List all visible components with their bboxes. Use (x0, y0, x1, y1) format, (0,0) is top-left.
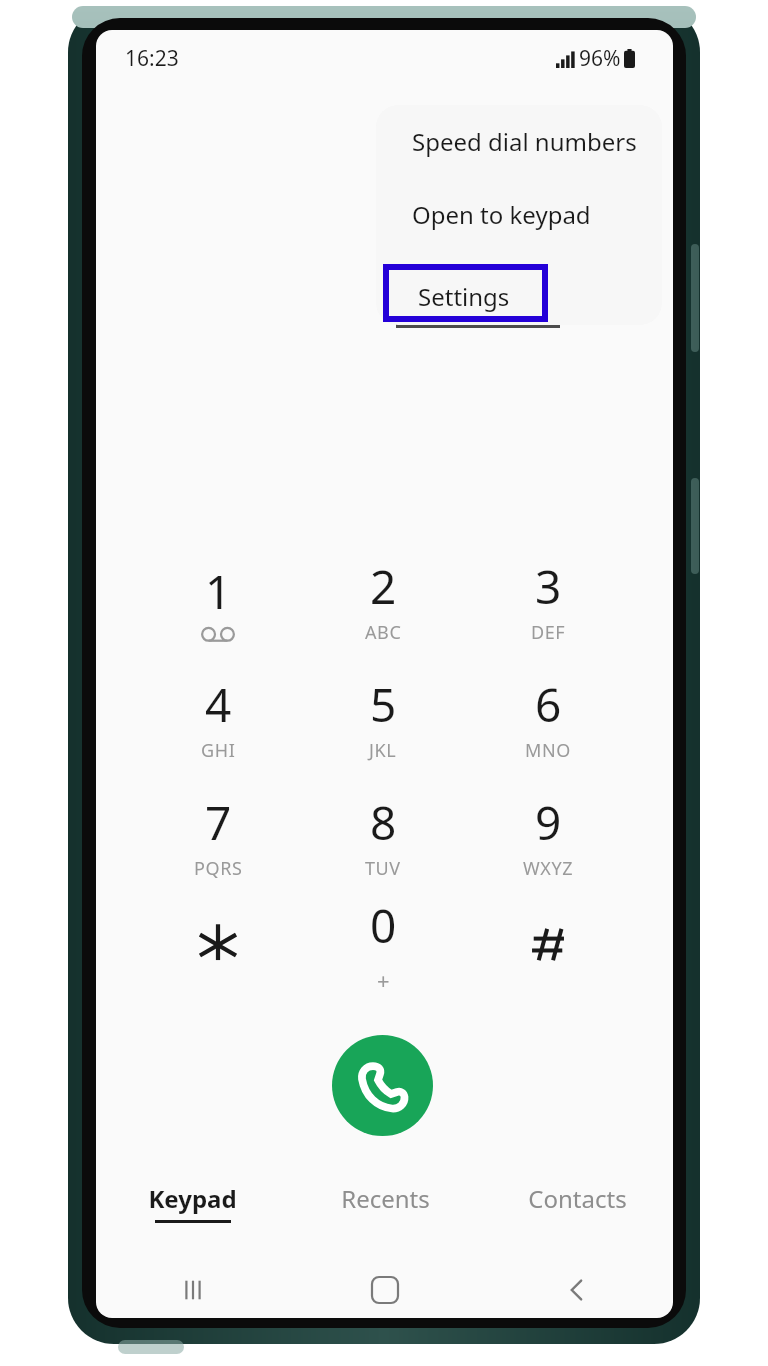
button[interactable]: Key 2 (313, 544, 453, 656)
staticText: 1 (205, 560, 232, 623)
staticText: Contacts (528, 1182, 627, 1215)
button[interactable]: Key 7 (148, 780, 288, 892)
button[interactable]: Settings (383, 264, 548, 322)
staticText: DEF (531, 620, 566, 645)
staticText: Settings (418, 280, 510, 313)
staticText: Recents (341, 1182, 430, 1215)
button[interactable]: Key 0 (313, 888, 453, 1000)
button[interactable]: Key 6 (478, 662, 618, 774)
staticText: Speed dial numbers (412, 125, 637, 158)
staticText: 96% (579, 44, 621, 73)
staticText: Open to keypad (412, 198, 591, 231)
button[interactable]: Key 3 (478, 544, 618, 656)
staticText: 6 (535, 673, 562, 736)
button[interactable]: Key * (148, 888, 288, 1000)
staticText: 0 (370, 894, 397, 957)
button[interactable]: Speed dial numbers (376, 105, 662, 178)
staticText: 3 (535, 555, 562, 618)
button[interactable]: Open to keypad (376, 178, 662, 251)
staticText: 2 (370, 555, 397, 618)
staticText: TUV (365, 856, 401, 881)
staticText: MNO (525, 738, 571, 763)
staticText: Keypad (148, 1182, 237, 1215)
staticText: WXYZ (523, 856, 574, 881)
staticText: 7 (205, 791, 232, 854)
button[interactable]: Key # (478, 888, 618, 1000)
button[interactable]: Key 1 (148, 544, 288, 656)
button[interactable]: Keypad (96, 1182, 289, 1240)
button[interactable]: Home (289, 1262, 481, 1318)
staticText: 4 (205, 673, 232, 736)
staticText: 5 (370, 673, 397, 736)
staticText: 16:23 (125, 44, 179, 73)
button[interactable]: Key 5 (313, 662, 453, 774)
button[interactable]: Back (481, 1262, 673, 1318)
staticText: Settings (412, 271, 504, 304)
staticText: PQRS (194, 856, 243, 881)
staticText: JKL (369, 738, 397, 763)
button[interactable]: Contacts (481, 1182, 673, 1240)
staticText: 9 (535, 791, 562, 854)
button[interactable]: Call (332, 1035, 433, 1136)
staticText: 8 (370, 791, 397, 854)
button[interactable]: Recents (289, 1182, 481, 1240)
button[interactable]: Key 9 (478, 780, 618, 892)
button[interactable]: Recent apps (96, 1262, 289, 1318)
staticText: GHI (201, 738, 236, 763)
staticText: + (377, 965, 391, 995)
button[interactable]: Settings (376, 251, 662, 324)
button[interactable]: Key 4 (148, 662, 288, 774)
button[interactable]: Key 8 (313, 780, 453, 892)
staticText: ABC (365, 620, 402, 645)
